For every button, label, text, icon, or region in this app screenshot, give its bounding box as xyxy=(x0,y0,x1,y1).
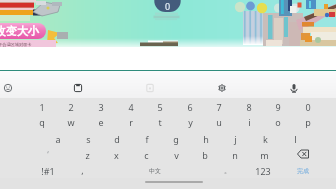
staticText: r xyxy=(129,116,133,128)
button[interactable]: 6 xyxy=(176,99,204,115)
staticText: , xyxy=(81,164,84,176)
button[interactable]: s xyxy=(74,131,102,147)
button[interactable]: 完成 xyxy=(289,163,317,179)
button[interactable]: Stickers xyxy=(142,80,158,96)
staticText: n xyxy=(232,149,238,161)
staticText: !#1 xyxy=(41,165,55,177)
staticText: 完成 xyxy=(297,167,309,175)
button[interactable]: g xyxy=(162,131,190,147)
button[interactable]: 7 xyxy=(205,99,233,115)
staticText: 7 xyxy=(216,101,222,113)
button[interactable]: c xyxy=(132,147,160,163)
button[interactable]: j xyxy=(221,131,249,147)
staticText: 9 xyxy=(275,101,281,113)
staticText: p xyxy=(305,116,311,128)
staticText: f xyxy=(145,133,149,145)
staticText: e xyxy=(98,116,104,128)
button[interactable]: y xyxy=(176,114,204,130)
staticText: 6 xyxy=(187,101,193,113)
staticText: m xyxy=(260,149,269,161)
button[interactable]: r xyxy=(117,114,145,130)
button[interactable]: 2 xyxy=(57,99,85,115)
button[interactable]: 改变大小 xyxy=(0,23,46,39)
button[interactable]: a xyxy=(44,131,72,147)
staticText: b xyxy=(202,149,208,161)
button[interactable]: k xyxy=(251,131,279,147)
staticText: 改变大小 xyxy=(0,24,39,38)
button[interactable]: 123 xyxy=(249,163,277,179)
button[interactable]: Clipboard xyxy=(70,80,86,96)
staticText: 中文 xyxy=(149,167,161,175)
staticText: 。 xyxy=(224,166,231,175)
staticText: q xyxy=(39,116,45,128)
button[interactable]: v xyxy=(162,147,190,163)
button[interactable]: p xyxy=(294,114,322,130)
staticText: i xyxy=(248,116,251,128)
button[interactable]: f xyxy=(133,131,161,147)
staticText: k xyxy=(263,133,268,145)
staticText: t xyxy=(158,116,162,128)
staticText: 4 xyxy=(128,101,134,113)
button[interactable]: 4 xyxy=(117,99,145,115)
staticText: 开合适区域对面卡牌 xyxy=(0,42,35,47)
button[interactable]: Voice input xyxy=(286,80,302,96)
button[interactable]: 1 xyxy=(28,99,56,115)
button[interactable]: , xyxy=(68,162,96,178)
staticText: w xyxy=(67,116,75,128)
button[interactable]: l xyxy=(281,131,309,147)
button[interactable]: 。 xyxy=(213,162,241,178)
button[interactable]: u xyxy=(205,114,233,130)
staticText: c xyxy=(144,149,149,161)
button[interactable]: 中文 xyxy=(141,163,169,179)
button[interactable]: !#1 xyxy=(34,163,62,179)
button[interactable]: 8 xyxy=(235,99,263,115)
button[interactable]: 3 xyxy=(87,99,115,115)
staticText: x xyxy=(114,149,119,161)
button[interactable]: q xyxy=(28,114,56,130)
button[interactable]: x xyxy=(102,147,130,163)
staticText: 123 xyxy=(255,165,271,177)
staticText: 1 xyxy=(39,101,45,113)
button[interactable]: d xyxy=(103,131,131,147)
staticText: y xyxy=(188,116,193,128)
button[interactable]: Settings xyxy=(214,80,230,96)
button[interactable]: t xyxy=(146,114,174,130)
staticText: h xyxy=(203,133,209,145)
staticText: g xyxy=(173,133,179,145)
button[interactable]: h xyxy=(192,131,220,147)
staticText: 5 xyxy=(157,101,163,113)
button[interactable]: 0 xyxy=(294,99,322,115)
staticText: j xyxy=(234,133,237,145)
button[interactable]: Backspace xyxy=(294,147,312,161)
staticText: d xyxy=(114,133,120,145)
staticText: 3 xyxy=(98,101,104,113)
staticText: z xyxy=(85,149,90,161)
button[interactable]: 9 xyxy=(264,99,292,115)
staticText: 0 xyxy=(305,101,311,113)
button[interactable]: i xyxy=(235,114,263,130)
staticText: 8 xyxy=(246,101,252,113)
staticText: l xyxy=(294,133,297,145)
button[interactable]: m xyxy=(250,147,278,163)
staticText: ‘ xyxy=(47,149,49,160)
button[interactable]: 5 xyxy=(146,99,174,115)
button[interactable]: z xyxy=(73,147,101,163)
staticText: v xyxy=(174,149,179,161)
staticText: 0 xyxy=(165,0,171,11)
button[interactable]: b xyxy=(191,147,219,163)
staticText: a xyxy=(55,133,61,145)
staticText: u xyxy=(216,116,222,128)
button[interactable]: e xyxy=(87,114,115,130)
button[interactable]: Emoji xyxy=(0,80,16,96)
staticText: o xyxy=(275,116,281,128)
staticText: s xyxy=(86,133,91,145)
button[interactable]: n xyxy=(221,147,249,163)
button[interactable]: w xyxy=(57,114,85,130)
staticText: 2 xyxy=(68,101,74,113)
button[interactable]: o xyxy=(264,114,292,130)
